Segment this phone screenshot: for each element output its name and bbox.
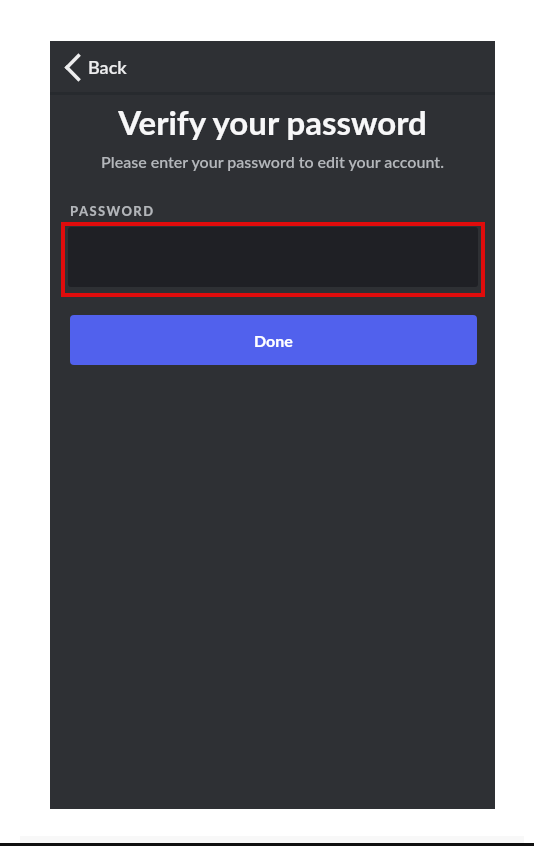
- staticText: Verify your password: [50, 102, 495, 142]
- staticText: Back: [88, 56, 127, 78]
- staticText: Please enter your password to edit your …: [50, 152, 495, 171]
- button[interactable]: Done: [70, 315, 477, 365]
- button[interactable]: Back: [57, 46, 141, 88]
- staticText: Done: [254, 331, 293, 350]
- staticText: PASSWORD: [70, 203, 155, 219]
